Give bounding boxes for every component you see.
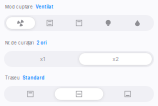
button[interactable]: Jos	[103, 88, 152, 100]
staticText: Standard	[22, 75, 44, 81]
button[interactable]: Ventilat	[6, 17, 35, 29]
button[interactable]: Sus	[6, 88, 55, 100]
button[interactable]: Mijloc	[55, 88, 103, 100]
button[interactable]: Sus si jos	[35, 17, 64, 29]
staticText: Ventilat	[35, 4, 53, 10]
staticText: Traseu	[5, 75, 20, 81]
button[interactable]: x2	[79, 53, 152, 65]
button[interactable]: Lampa	[94, 17, 123, 29]
button[interactable]: x1	[6, 53, 79, 65]
staticText: x1	[40, 56, 45, 62]
staticText: Mod cuptare	[5, 4, 33, 10]
staticText: 2 ori	[36, 40, 46, 46]
staticText: x2	[112, 56, 118, 62]
button[interactable]: Abur	[123, 17, 152, 29]
staticText: Nr. de curățări	[5, 40, 34, 46]
button[interactable]: Grill	[64, 17, 94, 29]
